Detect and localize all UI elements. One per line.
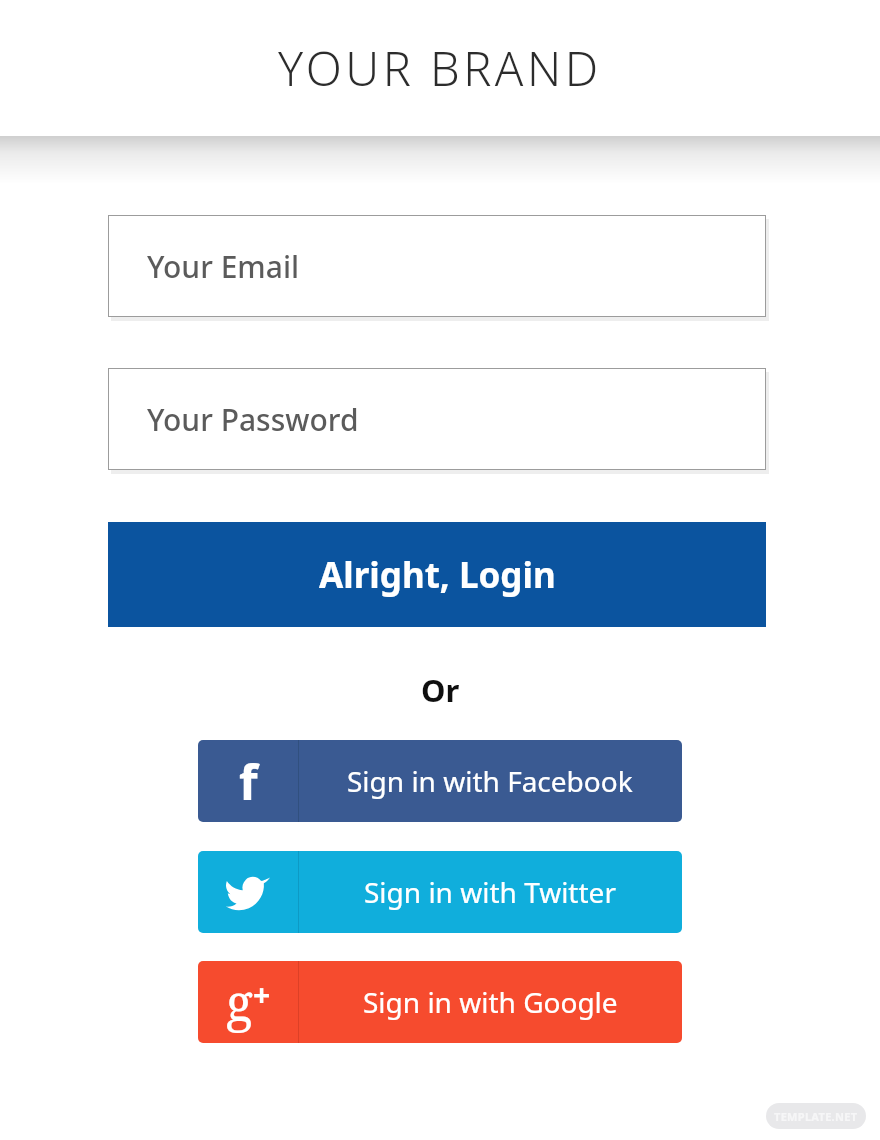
staticText: Your Password: [147, 399, 359, 440]
staticText: Sign in with Google: [363, 983, 618, 1021]
button[interactable]: Your Password: [108, 368, 766, 470]
other: Twitter: [226, 870, 270, 914]
staticText: Sign in with Facebook: [347, 762, 633, 800]
staticText: f: [239, 749, 258, 814]
staticText: Your Email: [147, 246, 300, 287]
staticText: Alright, Login: [319, 551, 556, 599]
button[interactable]: Facebook: [198, 740, 682, 822]
staticText: TEMPLATE.NET: [774, 1109, 858, 1124]
button[interactable]: Twitter: [198, 851, 682, 933]
staticText: Or: [421, 669, 460, 711]
staticText: g: [226, 968, 253, 1036]
button[interactable]: Alright, Login: [108, 522, 766, 627]
button[interactable]: Your Email: [108, 215, 766, 317]
staticText: YOUR BRAND: [278, 36, 602, 100]
staticText: +: [253, 974, 271, 1015]
staticText: Sign in with Twitter: [364, 873, 616, 911]
other: Google: [226, 968, 271, 1036]
button[interactable]: Google: [198, 961, 682, 1043]
